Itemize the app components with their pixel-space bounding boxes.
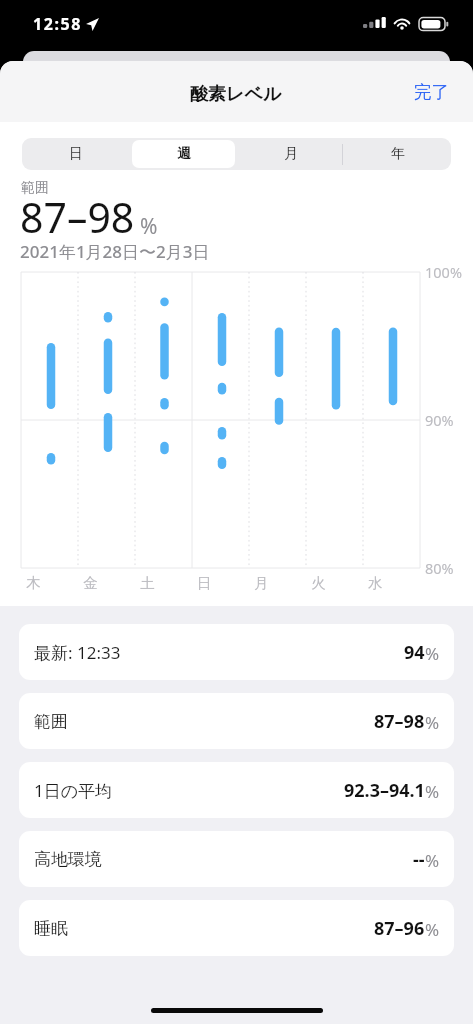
staticText: 87–98: [20, 189, 135, 245]
staticText: 90%: [425, 410, 454, 430]
staticText: 高地環境: [34, 849, 102, 870]
button[interactable]: 年: [346, 140, 449, 168]
staticText: 範囲: [21, 179, 49, 197]
button[interactable]: 範囲: [19, 693, 454, 749]
staticText: %: [425, 711, 440, 734]
staticText: 土: [140, 574, 155, 592]
staticText: 日: [69, 145, 83, 163]
staticText: 最新: 12:33: [34, 641, 121, 664]
staticText: 酸素レベル: [190, 83, 282, 106]
staticText: 日: [197, 574, 212, 592]
staticText: 月: [254, 574, 269, 592]
staticText: 87–96: [374, 916, 425, 941]
staticText: 2021年1月28日〜2月3日: [20, 240, 210, 263]
staticText: 87–98: [374, 709, 425, 734]
staticText: 1日の平均: [34, 779, 113, 802]
staticText: %: [425, 780, 440, 803]
button[interactable]: 完了: [407, 75, 456, 109]
staticText: 睡眠: [34, 918, 68, 939]
staticText: 範囲: [34, 711, 68, 732]
button[interactable]: 月: [239, 140, 342, 168]
staticText: 92.3–94.1: [344, 778, 425, 803]
button[interactable]: 日: [24, 140, 128, 168]
staticText: %: [425, 918, 440, 941]
staticText: 100%: [425, 262, 462, 282]
button[interactable]: 1日の平均: [19, 762, 454, 818]
staticText: %: [425, 642, 440, 665]
staticText: %: [425, 849, 440, 872]
staticText: 月: [284, 145, 298, 163]
staticText: 週: [177, 145, 191, 163]
button[interactable]: 最新: 12:33: [19, 624, 454, 680]
staticText: %: [140, 212, 158, 241]
staticText: 完了: [414, 81, 449, 103]
staticText: 94: [404, 640, 425, 665]
button[interactable]: 高地環境: [19, 831, 454, 887]
staticText: 木: [26, 574, 41, 592]
staticText: 水: [368, 574, 383, 592]
staticText: 12:58: [33, 13, 83, 35]
staticText: 火: [311, 574, 326, 592]
button[interactable]: 週: [132, 140, 235, 168]
staticText: 金: [83, 574, 98, 592]
staticText: --: [413, 847, 425, 872]
staticText: 年: [391, 145, 405, 163]
staticText: 80%: [425, 558, 454, 578]
button[interactable]: 睡眠: [19, 900, 454, 956]
